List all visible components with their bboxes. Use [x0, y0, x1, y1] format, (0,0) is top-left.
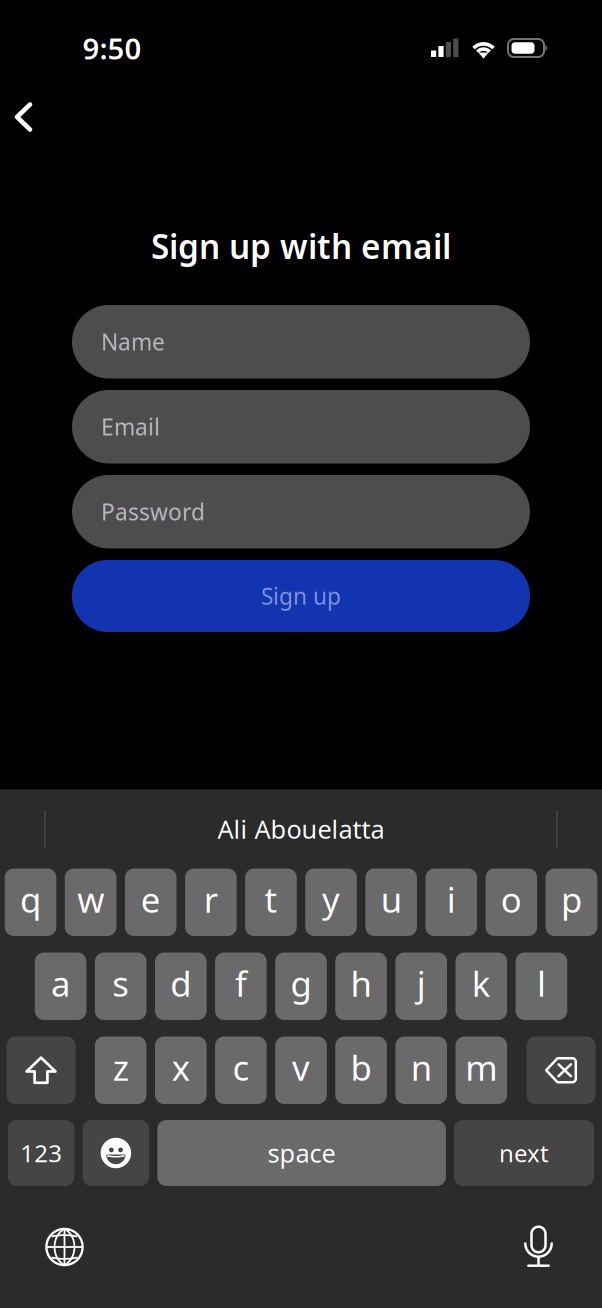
- staticText: Password: [101, 497, 205, 527]
- staticText: a: [51, 960, 70, 1006]
- staticText: Name: [101, 327, 165, 357]
- button[interactable]: Email: [72, 390, 530, 463]
- staticText: w: [77, 876, 104, 922]
- button[interactable]: f: [215, 952, 267, 1020]
- staticText: d: [170, 960, 191, 1006]
- button[interactable]: k: [455, 952, 507, 1020]
- button[interactable]: i: [425, 868, 477, 936]
- button[interactable]: x: [155, 1036, 207, 1104]
- staticText: v: [292, 1044, 310, 1090]
- staticText: r: [204, 876, 218, 922]
- button[interactable]: v: [275, 1036, 327, 1104]
- staticText: 9:50: [82, 28, 141, 67]
- button[interactable]: z: [95, 1036, 146, 1104]
- button[interactable]: Password: [72, 475, 530, 548]
- button[interactable]: w: [65, 868, 116, 936]
- staticText: p: [561, 876, 582, 922]
- button[interactable]: Shift: [6, 1036, 75, 1104]
- staticText: g: [290, 960, 311, 1006]
- staticText: m: [465, 1044, 497, 1090]
- staticText: k: [472, 960, 491, 1006]
- button[interactable]: space: [157, 1120, 446, 1186]
- button[interactable]: a: [35, 952, 86, 1020]
- staticText: y: [322, 876, 340, 922]
- button[interactable]: Name: [72, 305, 530, 378]
- button[interactable]: next: [454, 1120, 594, 1186]
- button[interactable]: g: [275, 952, 327, 1020]
- staticText: next: [499, 1137, 549, 1169]
- button[interactable]: r: [185, 868, 237, 936]
- staticText: b: [351, 1044, 372, 1090]
- button[interactable]: Delete: [526, 1036, 595, 1104]
- staticText: n: [411, 1044, 432, 1090]
- staticText: i: [447, 876, 456, 922]
- staticText: z: [113, 1044, 129, 1090]
- button[interactable]: l: [516, 952, 567, 1020]
- staticText: 123: [20, 1137, 62, 1169]
- staticText: e: [141, 876, 161, 922]
- button[interactable]: 123: [8, 1120, 74, 1186]
- staticText: h: [351, 960, 372, 1006]
- staticText: Sign up: [261, 581, 341, 611]
- button[interactable]: c: [215, 1036, 267, 1104]
- staticText: Ali Abouelatta: [217, 812, 384, 846]
- button[interactable]: Sign up: [72, 560, 530, 632]
- button[interactable]: Next keyboard: [45, 1227, 84, 1266]
- staticText: c: [232, 1044, 249, 1090]
- staticText: l: [537, 960, 546, 1006]
- button[interactable]: Back: [0, 84, 43, 142]
- button[interactable]: o: [486, 868, 537, 936]
- staticText: o: [501, 876, 522, 922]
- button[interactable]: Dictate: [524, 1225, 553, 1268]
- button[interactable]: j: [395, 952, 447, 1020]
- button[interactable]: m: [455, 1036, 507, 1104]
- button[interactable]: p: [546, 868, 597, 936]
- staticText: Email: [101, 412, 160, 442]
- button[interactable]: u: [365, 868, 417, 936]
- button[interactable]: b: [335, 1036, 387, 1104]
- button[interactable]: h: [335, 952, 387, 1020]
- button[interactable]: t: [245, 868, 297, 936]
- staticText: j: [417, 960, 426, 1006]
- staticText: q: [20, 876, 41, 922]
- staticText: space: [268, 1136, 336, 1170]
- button[interactable]: s: [95, 952, 146, 1020]
- button[interactable]: Emoji: [83, 1120, 149, 1186]
- staticText: t: [264, 876, 277, 922]
- staticText: s: [112, 960, 129, 1006]
- button[interactable]: n: [395, 1036, 447, 1104]
- staticText: u: [381, 876, 402, 922]
- button[interactable]: e: [125, 868, 176, 936]
- button[interactable]: d: [155, 952, 207, 1020]
- button[interactable]: y: [305, 868, 357, 936]
- staticText: Sign up with email: [151, 224, 451, 268]
- button[interactable]: q: [5, 868, 56, 936]
- staticText: x: [172, 1044, 190, 1090]
- staticText: f: [235, 960, 247, 1006]
